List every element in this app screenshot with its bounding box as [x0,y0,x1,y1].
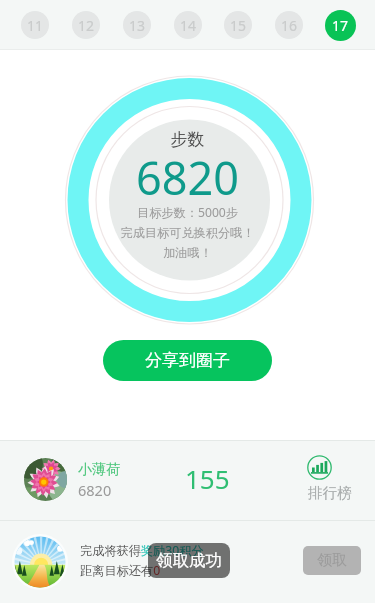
staticText: 11 [27,16,44,35]
staticText: 15 [230,16,247,35]
button[interactable]: 排行榜 [300,450,358,504]
staticText: 14 [180,16,197,35]
button[interactable]: 17 [325,10,356,41]
staticText: 距离目标还有0 [80,562,161,579]
button[interactable]: 领取 [303,546,361,575]
staticText: 6820 [78,480,112,500]
staticText: 领取 [317,551,347,570]
staticText: 16 [281,16,298,35]
staticText: 目标步数：5000步 完成目标可兑换积分哦！ 加油哦！ [0,204,375,261]
staticText: 12 [78,16,95,35]
staticText: 领取成功 [156,550,222,571]
staticText: 排行榜 [308,484,352,502]
staticText: 分享到圈子 [145,350,230,371]
staticText: 13 [129,16,146,35]
button[interactable] [0,441,375,520]
button[interactable]: 13 [123,11,151,39]
staticText: 小薄荷 [78,461,120,479]
staticText: 17 [332,16,349,35]
staticText: 步数 [0,129,375,150]
button[interactable]: 11 [21,11,49,39]
button[interactable]: 16 [275,11,303,39]
button[interactable]: 分享到圈子 [103,340,272,381]
staticText: 完成将获得奖励30积分 [80,542,204,559]
button[interactable]: 12 [72,11,100,39]
button[interactable]: 15 [224,11,252,39]
staticText: 155 [185,461,230,496]
staticText: 6820 [0,147,375,208]
button[interactable] [0,520,375,603]
button[interactable]: 14 [174,11,202,39]
